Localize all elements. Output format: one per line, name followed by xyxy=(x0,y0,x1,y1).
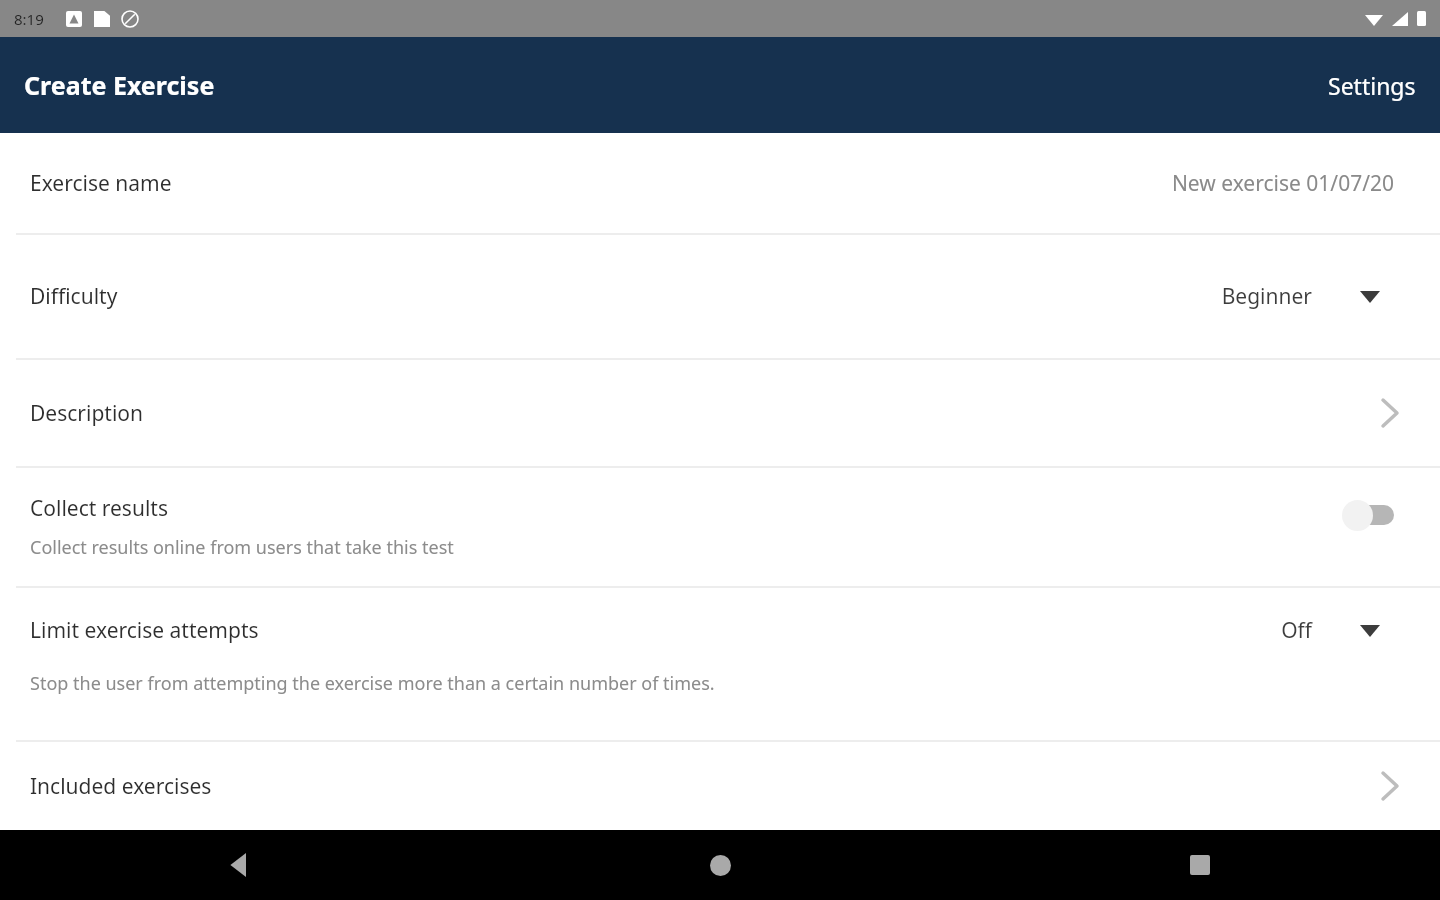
staticText: Difficulty xyxy=(30,282,118,311)
staticText: Create Exercise xyxy=(24,68,215,102)
button[interactable]: Included exercises xyxy=(0,742,1440,830)
staticText: Collect results online from users that t… xyxy=(30,535,454,560)
button[interactable]: Settings xyxy=(1304,54,1440,117)
button[interactable]: Exercise name xyxy=(0,133,1440,233)
staticText: Exercise name xyxy=(30,169,172,198)
button[interactable]: Difficulty xyxy=(0,235,1440,358)
staticText: Stop the user from attempting the exerci… xyxy=(30,671,715,696)
button[interactable]: Collect results xyxy=(0,468,1440,586)
staticText: Off xyxy=(1281,616,1312,645)
button[interactable]: Recent apps xyxy=(960,830,1440,900)
button[interactable]: Collect results toggle xyxy=(1342,499,1394,531)
staticText: Limit exercise attempts xyxy=(30,616,259,645)
staticText: Description xyxy=(30,399,144,428)
staticText: New exercise 01/07/20 xyxy=(1171,169,1394,198)
button[interactable]: Back xyxy=(0,830,480,900)
staticText: 8:19 xyxy=(14,9,44,29)
button[interactable]: Limit exercise attempts xyxy=(0,588,1440,740)
button[interactable]: Home xyxy=(480,830,960,900)
staticText: Included exercises xyxy=(30,772,212,801)
button[interactable]: Description xyxy=(0,360,1440,466)
staticText: Beginner xyxy=(1221,282,1312,311)
staticText: Settings xyxy=(1328,70,1416,101)
staticText: Collect results xyxy=(30,494,168,523)
